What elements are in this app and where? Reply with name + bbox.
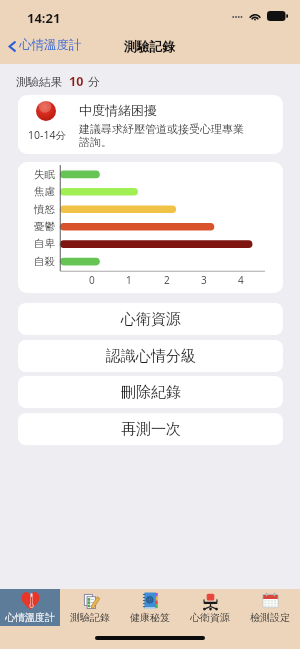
button[interactable]: 心情溫度計 (8, 37, 82, 53)
staticText: 4 (238, 273, 244, 287)
button[interactable]: 檢測設定 (240, 589, 300, 626)
staticText: 2 (164, 273, 170, 287)
staticText: 檢測設定 (250, 611, 290, 624)
staticText: 心情溫度計 (19, 37, 82, 53)
staticText: 測驗結果 (16, 75, 63, 90)
button[interactable]: 心衛資源 (180, 589, 240, 626)
staticText: 憂鬱 (34, 220, 55, 233)
staticText: 中度情緒困擾 (79, 102, 157, 118)
staticText: 失眠 (34, 168, 55, 181)
staticText: 14:21 (27, 9, 61, 27)
button[interactable]: 再測一次 (18, 413, 283, 445)
button[interactable]: 測驗記錄 (60, 589, 120, 626)
staticText: 健康秘笈 (130, 611, 170, 624)
staticText: 心衛資源 (121, 310, 181, 329)
staticText: 認識心情分級 (106, 347, 196, 366)
button[interactable]: 心情溫度計 (0, 589, 60, 626)
button[interactable]: 健康秘笈 (120, 589, 180, 626)
staticText: 3 (201, 273, 207, 287)
staticText: 憤怒 (34, 203, 55, 216)
staticText: 再測一次 (121, 420, 181, 439)
staticText: 心情溫度計 (5, 611, 55, 624)
staticText: 分 (88, 75, 100, 90)
staticText: 焦慮 (34, 185, 55, 198)
staticText: 自卑 (34, 237, 55, 250)
button[interactable]: 心衛資源 (18, 303, 283, 335)
staticText: 0 (89, 273, 95, 287)
staticText: 測驗記錄 (124, 39, 176, 55)
staticText: 自殺 (34, 255, 55, 268)
staticText: 1 (126, 273, 132, 287)
staticText: 10-14分 (28, 128, 66, 142)
staticText: 測驗記錄 (70, 611, 110, 624)
staticText: 建議尋求紓壓管道或接受心理專業 諮詢。 (79, 122, 244, 149)
staticText: 刪除紀錄 (121, 383, 181, 402)
staticText: 心衛資源 (190, 611, 230, 624)
staticText: 10 (69, 73, 84, 90)
button[interactable]: 認識心情分級 (18, 340, 283, 372)
button[interactable]: 刪除紀錄 (18, 376, 283, 408)
